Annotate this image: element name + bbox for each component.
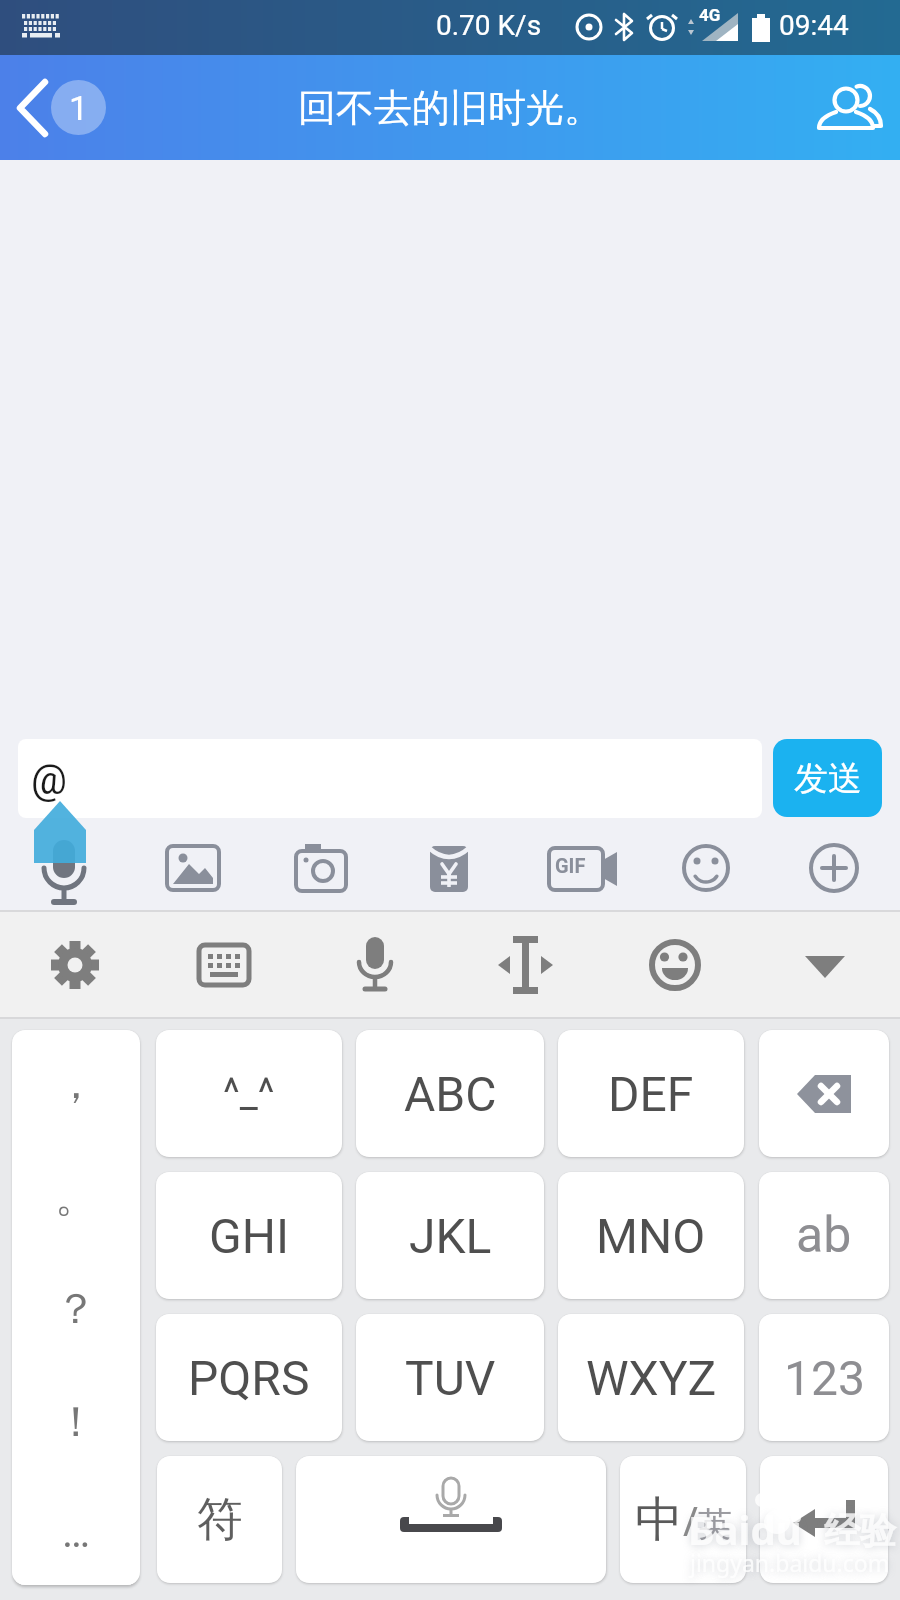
staticText: 经验: [824, 1508, 896, 1553]
staticText: DEF: [608, 1066, 694, 1122]
button[interactable]: 123: [759, 1314, 889, 1441]
button[interactable]: [407, 826, 491, 910]
button[interactable]: [483, 923, 567, 1007]
button[interactable]: [536, 826, 620, 910]
button[interactable]: ABC: [356, 1030, 544, 1157]
button[interactable]: GHI: [156, 1172, 342, 1299]
staticText: ？: [55, 1283, 97, 1336]
button[interactable]: 发送: [773, 739, 882, 817]
staticText: 回不去的旧时光。: [298, 84, 602, 132]
staticText: ABC: [404, 1066, 497, 1122]
button[interactable]: GIF: [536, 826, 620, 910]
staticText: jingyan.baidu.com: [690, 1547, 890, 1578]
staticText: 中/英: [635, 1490, 732, 1550]
button[interactable]: 符: [157, 1456, 282, 1583]
button[interactable]: MNO: [558, 1172, 744, 1299]
button[interactable]: 中/英: [620, 1456, 746, 1583]
staticText: GIF: [555, 854, 586, 877]
button[interactable]: WXYZ: [558, 1314, 744, 1441]
staticText: 。: [55, 1171, 97, 1224]
button[interactable]: [296, 1456, 606, 1583]
button[interactable]: [151, 826, 235, 910]
staticText: TUV: [405, 1350, 496, 1406]
button[interactable]: [279, 826, 363, 910]
button[interactable]: [333, 923, 417, 1007]
button[interactable]: PQRS: [156, 1314, 342, 1441]
staticText: Baidu: [688, 1502, 802, 1556]
button[interactable]: [633, 923, 717, 1007]
staticText: GHI: [209, 1208, 289, 1264]
staticText: ，: [55, 1058, 97, 1111]
staticText: …: [62, 1508, 91, 1557]
button[interactable]: TUV: [356, 1314, 544, 1441]
staticText: WXYZ: [586, 1350, 717, 1406]
button[interactable]: [812, 78, 888, 140]
staticText: 1: [69, 88, 89, 128]
button[interactable]: [183, 923, 267, 1007]
button[interactable]: JKL: [356, 1172, 544, 1299]
button[interactable]: [5, 77, 65, 142]
staticText: 发送: [794, 757, 862, 800]
button[interactable]: ，: [12, 1030, 140, 1585]
button[interactable]: [760, 1456, 888, 1583]
staticText: JKL: [409, 1208, 492, 1264]
staticText: 09:44: [779, 9, 849, 42]
staticText: @: [31, 757, 67, 804]
button[interactable]: [759, 1030, 889, 1157]
staticText: 123: [784, 1350, 865, 1406]
button[interactable]: [22, 826, 106, 910]
staticText: 0.70 K/s: [436, 9, 542, 42]
staticText: ^_^: [223, 1070, 275, 1117]
staticText: ab: [796, 1206, 852, 1265]
button[interactable]: ab: [759, 1172, 889, 1299]
button[interactable]: ^_^: [156, 1030, 342, 1157]
staticText: PQRS: [188, 1350, 310, 1406]
button[interactable]: [783, 923, 867, 1007]
button[interactable]: 1: [51, 80, 106, 135]
button[interactable]: [664, 826, 748, 910]
button[interactable]: [792, 826, 876, 910]
staticText: 符: [197, 1491, 243, 1549]
button[interactable]: DEF: [558, 1030, 744, 1157]
staticText: ！: [55, 1396, 97, 1449]
button[interactable]: @: [18, 739, 762, 818]
staticText: 4G: [699, 5, 721, 25]
button[interactable]: [33, 923, 117, 1007]
staticText: MNO: [596, 1208, 706, 1264]
